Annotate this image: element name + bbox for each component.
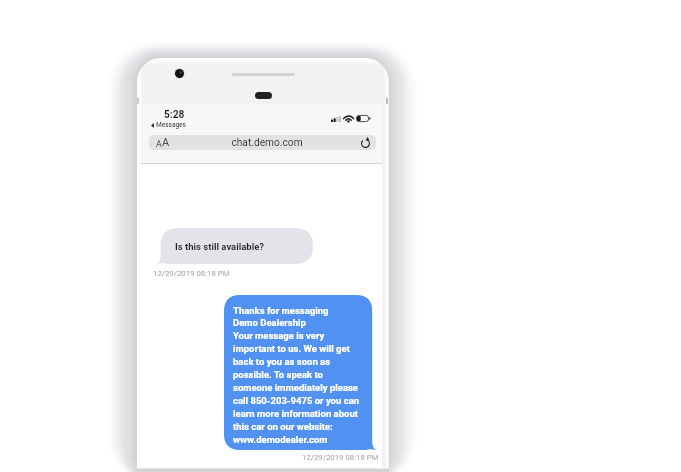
- staticText: 12/29/2019 08:18 PM: [153, 269, 230, 278]
- button[interactable]: Is this still available?: [153, 228, 313, 264]
- button[interactable]: Text size options: [149, 135, 376, 150]
- staticText: A: [156, 139, 162, 149]
- staticText: Is this still available?: [175, 241, 265, 252]
- other: Reload page: [361, 137, 370, 148]
- button[interactable]: Thanks for messaging Demo Dealership You…: [224, 295, 380, 450]
- button[interactable]: Back to Messages: [151, 121, 186, 129]
- other: Text size options: [156, 136, 170, 149]
- staticText: 12/29/2019 08:18 PM: [302, 453, 379, 462]
- staticText: 5:28: [164, 109, 185, 121]
- staticText: Messages: [156, 121, 186, 129]
- staticText: chat.demo.com: [231, 137, 303, 149]
- staticText: Thanks for messaging Demo Dealership You…: [233, 305, 364, 445]
- staticText: A: [162, 136, 170, 149]
